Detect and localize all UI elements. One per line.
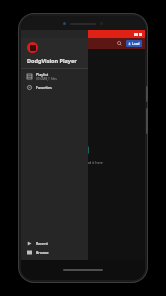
button[interactable]: Browse <box>21 248 88 257</box>
button[interactable]: Playlist <box>21 71 88 82</box>
staticText: DodgVision Player <box>27 57 77 64</box>
staticText: Browse <box>36 250 49 255</box>
staticText: Playlist <box>36 72 49 77</box>
staticText: Load <box>132 42 140 46</box>
staticText: Favorites <box>36 85 52 90</box>
button[interactable]: Load <box>126 40 142 47</box>
staticText: Recent <box>36 241 48 246</box>
staticText: 00.0MB,1 files <box>36 77 57 81</box>
staticText: IPTV files to load it here <box>63 160 103 165</box>
button[interactable]: Search <box>115 39 124 48</box>
button[interactable]: Favorites <box>21 82 88 93</box>
button[interactable]: Recent <box>21 239 88 248</box>
